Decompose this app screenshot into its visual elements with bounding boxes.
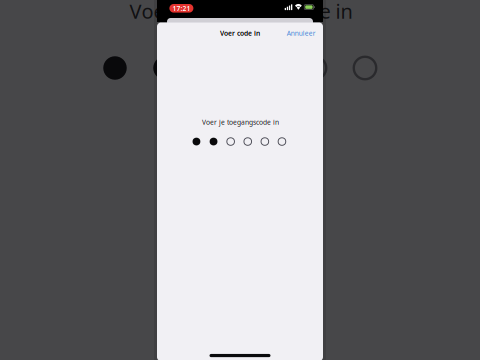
staticText: Voer code in — [220, 29, 260, 37]
staticText: Voer je toegangscode in — [129, 0, 352, 24]
staticText: Annuleer — [287, 29, 316, 37]
button[interactable]: Annuleer — [281, 26, 323, 40]
staticText: 17:21 — [172, 4, 190, 13]
staticText: Voer je toegangscode in — [202, 118, 279, 127]
